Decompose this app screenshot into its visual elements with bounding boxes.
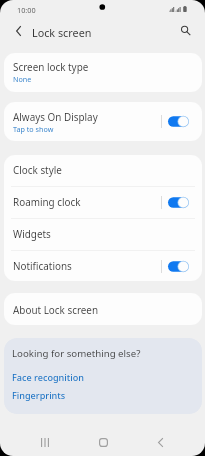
staticText: Looking for something else? xyxy=(12,347,141,360)
button[interactable]: Toggle xyxy=(168,261,189,272)
staticText: 10:00 xyxy=(17,5,36,15)
button[interactable]: About Lock screen xyxy=(4,293,202,325)
button[interactable]: Search xyxy=(174,19,198,43)
staticText: Screen lock type xyxy=(13,60,89,73)
staticText: Roaming clock xyxy=(13,195,81,208)
button[interactable]: Toggle xyxy=(168,197,189,208)
button[interactable]: Notifications xyxy=(4,251,202,281)
button[interactable]: Recent apps xyxy=(31,428,59,456)
staticText: About Lock screen xyxy=(13,303,99,316)
button[interactable]: Clock style xyxy=(4,155,202,186)
staticText: Notifications xyxy=(13,259,72,272)
staticText: Lock screen xyxy=(32,25,92,40)
button[interactable]: Home xyxy=(89,428,117,456)
button[interactable]: Screen lock type xyxy=(4,53,202,92)
button[interactable]: Roaming clock xyxy=(4,187,202,218)
staticText: Tap to show xyxy=(13,124,54,134)
button[interactable]: Widgets xyxy=(4,219,202,250)
button[interactable]: Back xyxy=(6,19,30,43)
staticText: Always On Display xyxy=(13,110,98,123)
button[interactable]: Toggle xyxy=(168,116,189,127)
button[interactable]: Back xyxy=(146,428,174,456)
button[interactable]: Always On Display xyxy=(4,102,202,141)
staticText: Clock style xyxy=(13,163,62,176)
button[interactable]: Fingerprints xyxy=(12,389,66,401)
button[interactable]: Face recognition xyxy=(12,371,84,383)
staticText: None xyxy=(13,74,32,84)
staticText: Widgets xyxy=(13,227,51,240)
